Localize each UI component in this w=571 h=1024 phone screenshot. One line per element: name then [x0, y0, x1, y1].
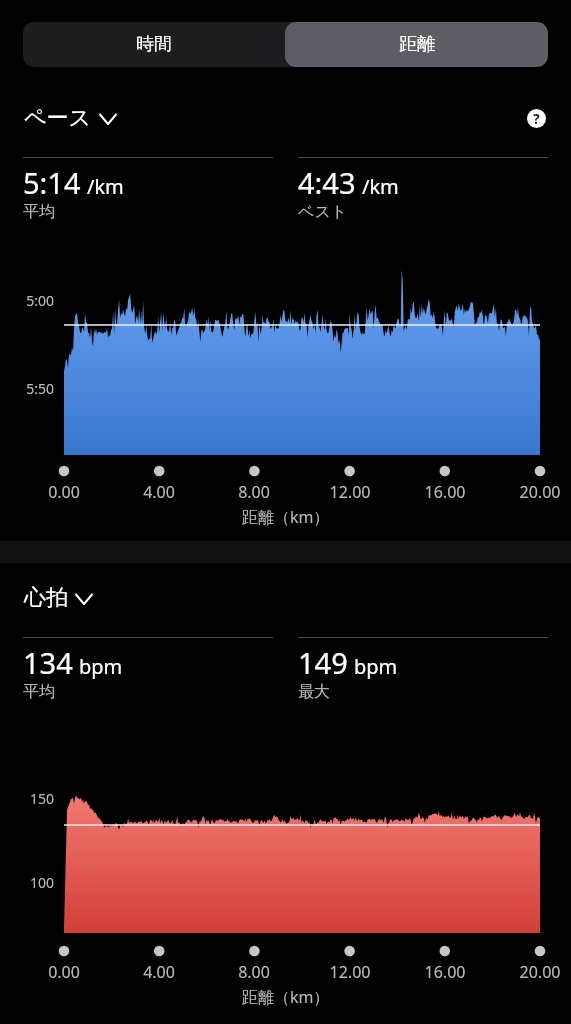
staticText: 100	[4, 873, 54, 892]
staticText: 4:43	[298, 163, 356, 202]
staticText: 12.00	[320, 961, 380, 983]
staticText: 8.00	[224, 481, 284, 503]
staticText: 平均	[23, 682, 55, 702]
staticText: 平均	[23, 202, 55, 222]
staticText: bpm	[354, 653, 398, 680]
staticText: 16.00	[415, 481, 475, 503]
staticText: 149	[298, 643, 348, 682]
staticText: 134	[23, 643, 73, 682]
staticText: 4.00	[129, 481, 189, 503]
staticText: 距離（km）	[242, 986, 330, 1008]
button[interactable]: 距離	[285, 22, 548, 67]
staticText: /km	[362, 173, 399, 200]
staticText: /km	[87, 173, 124, 200]
staticText: 8.00	[224, 961, 284, 983]
button[interactable]: 心拍	[24, 584, 94, 612]
staticText: 心拍	[24, 584, 68, 612]
staticText: 最大	[298, 682, 330, 702]
staticText: 16.00	[415, 961, 475, 983]
staticText: bpm	[79, 653, 123, 680]
staticText: ペース	[24, 104, 92, 132]
staticText: 距離	[399, 33, 435, 56]
staticText: 20.00	[510, 481, 570, 503]
staticText: 5:14	[23, 163, 81, 202]
staticText: 距離（km）	[242, 506, 330, 528]
button[interactable]: 時間	[23, 22, 285, 67]
staticText: 20.00	[510, 961, 570, 983]
staticText: 5:00	[4, 291, 54, 310]
button[interactable]: Help	[523, 105, 549, 131]
staticText: ベスト	[298, 202, 348, 222]
staticText: 5:50	[4, 379, 54, 398]
staticText: 12.00	[320, 481, 380, 503]
staticText: 0.00	[34, 481, 94, 503]
staticText: 150	[4, 789, 54, 808]
staticText: 4.00	[129, 961, 189, 983]
staticText: 時間	[136, 33, 172, 56]
staticText: 0.00	[34, 961, 94, 983]
button[interactable]: ペース	[24, 104, 118, 132]
staticText: ?	[533, 109, 540, 128]
